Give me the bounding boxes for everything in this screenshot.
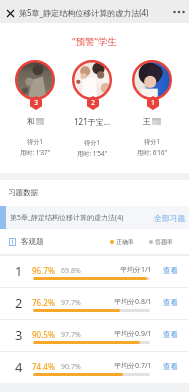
- staticText: “预警”学生: [0, 35, 189, 48]
- staticText: 76.2%: [32, 297, 55, 308]
- staticText: 3: [34, 98, 39, 108]
- staticText: 90.5%: [32, 329, 55, 340]
- staticText: 3: [15, 326, 23, 344]
- staticText: 69.8%: [61, 266, 81, 276]
- staticText: 第5章_静定结构位移计算的虚力法(4): [19, 7, 149, 18]
- button[interactable]: Student 王: [132, 60, 172, 100]
- staticText: 得分1: [84, 138, 100, 146]
- staticText: 4: [15, 358, 23, 376]
- button[interactable]: 第5章_静定结构位移计算的虚力法(4): [0, 206, 189, 229]
- button[interactable]: 查看: [162, 362, 179, 371]
- staticText: 121于宝…: [74, 116, 111, 127]
- staticText: 查看: [163, 330, 178, 339]
- staticText: 74.4%: [32, 361, 55, 372]
- button[interactable]: 1: [0, 255, 189, 287]
- button[interactable]: 2: [0, 287, 189, 319]
- staticText: 查看: [163, 298, 178, 307]
- staticText: 2: [15, 294, 23, 312]
- staticText: 用时: 1'54": [77, 149, 108, 157]
- staticText: 平均分0.7/1: [114, 361, 152, 371]
- button[interactable]: 查看: [162, 266, 179, 275]
- staticText: 得分1: [27, 137, 43, 145]
- button[interactable]: Student 和: [15, 60, 55, 100]
- staticText: 和: [27, 116, 35, 126]
- staticText: 90.7%: [61, 362, 81, 372]
- staticText: 查看: [163, 266, 178, 275]
- button[interactable]: More options: [169, 2, 189, 22]
- staticText: 96.7%: [32, 265, 55, 276]
- staticText: 第5章_静定结构位移计算的虚力法(4): [10, 213, 154, 223]
- staticText: 平均分0.9/1: [114, 329, 152, 339]
- button[interactable]: 3: [0, 319, 189, 351]
- staticText: 1: [151, 98, 156, 108]
- staticText: 97.7%: [61, 330, 81, 340]
- staticText: 1: [15, 262, 23, 280]
- staticText: 97.7%: [61, 298, 81, 308]
- button[interactable]: 查看: [162, 298, 179, 307]
- staticText: 平均分1/1: [120, 265, 152, 275]
- button[interactable]: Student 121于宝…: [72, 60, 112, 100]
- staticText: 习题数据: [8, 188, 38, 197]
- staticText: 王: [143, 116, 151, 126]
- staticText: 客观题: [21, 237, 44, 246]
- staticText: 用时: 1'37": [20, 148, 51, 156]
- button[interactable]: 查看: [162, 330, 179, 339]
- staticText: 用时: 6'16": [137, 148, 168, 156]
- staticText: 正确率: [116, 238, 134, 246]
- staticText: 2: [91, 98, 96, 108]
- staticText: 得分1: [144, 137, 160, 145]
- button[interactable]: 4: [0, 351, 189, 383]
- button[interactable]: Close: [0, 2, 20, 22]
- staticText: 全部习题: [154, 213, 186, 223]
- staticText: 答题率: [155, 238, 173, 246]
- staticText: 查看: [163, 362, 178, 371]
- staticText: 平均分0.8/1: [114, 297, 152, 307]
